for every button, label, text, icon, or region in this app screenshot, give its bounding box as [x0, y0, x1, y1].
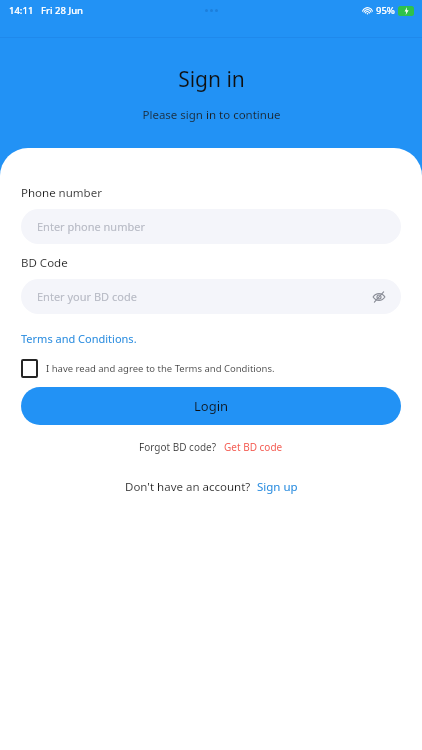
staticText: Login — [194, 397, 229, 415]
button[interactable]: Sign up — [257, 479, 298, 495]
staticText: BD Code — [21, 255, 68, 271]
button[interactable]: Enter phone number — [21, 209, 401, 244]
button[interactable]: Enter your BD code — [21, 279, 401, 314]
staticText: Please sign in to continue — [142, 107, 281, 123]
staticText: Don't have an account? — [125, 479, 251, 495]
staticText: Enter your BD code — [37, 289, 137, 304]
button[interactable]: I have read and agree to the Terms and C… — [21, 359, 401, 378]
staticText: Fri 28 Jun — [41, 4, 84, 17]
staticText: Enter phone number — [37, 219, 145, 234]
staticText: Phone number — [21, 185, 102, 201]
button[interactable]: Show BD code — [368, 286, 390, 308]
staticText: I have read and agree to the Terms and C… — [46, 362, 275, 375]
staticText: 14:11 — [9, 4, 34, 17]
staticText: Sign in — [178, 65, 245, 94]
staticText: 95% — [376, 4, 395, 17]
staticText: Forgot BD code? — [139, 440, 217, 454]
button[interactable]: Get BD code — [224, 440, 283, 454]
button[interactable]: Terms and Conditions. — [21, 331, 137, 346]
button[interactable]: Login — [21, 387, 401, 425]
